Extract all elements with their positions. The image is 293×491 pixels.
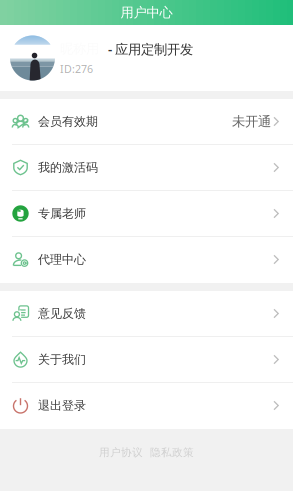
button[interactable]: 我的激活码 [0, 145, 293, 191]
button[interactable]: 隐私政策 [150, 446, 194, 459]
button[interactable]: 代理中心 [0, 237, 293, 283]
staticText: 关于我们 [38, 352, 86, 367]
button[interactable]: 专属老师 [0, 191, 293, 237]
staticText: 退出登录 [38, 398, 86, 413]
staticText: 用户协议 [99, 446, 143, 459]
button[interactable]: 用户协议 [99, 446, 143, 459]
button[interactable]: 关于我们 [0, 337, 293, 383]
staticText: - 应用定制开发 [108, 40, 193, 58]
staticText: 会员有效期 [38, 114, 98, 129]
staticText: 用户中心 [120, 4, 172, 21]
button[interactable]: 会员有效期 [0, 99, 293, 145]
staticText: 意见反馈 [38, 306, 86, 321]
button[interactable]: 昵称用 [0, 25, 293, 91]
staticText: ID:276 [60, 62, 93, 76]
staticText: 隐私政策 [150, 446, 194, 459]
staticText: 我的激活码 [38, 160, 98, 175]
button[interactable]: 退出登录 [0, 383, 293, 429]
staticText: 专属老师 [38, 206, 86, 221]
staticText: 代理中心 [38, 252, 86, 267]
staticText: 未开通 [232, 113, 271, 130]
button[interactable]: 意见反馈 [0, 291, 293, 337]
